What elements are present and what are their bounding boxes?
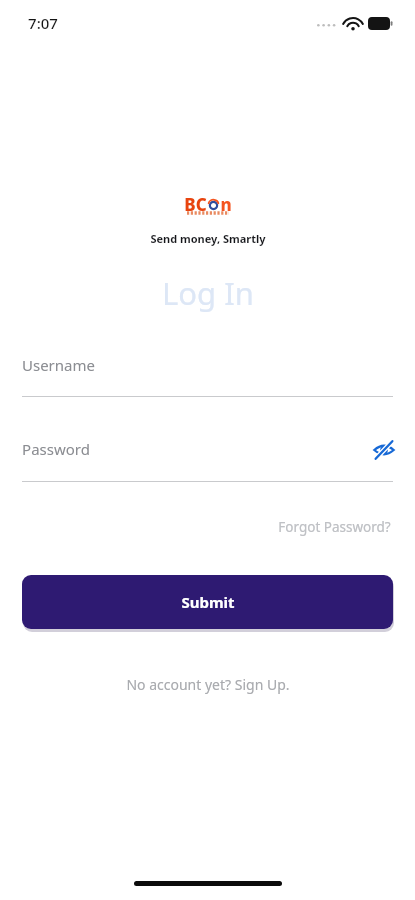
button[interactable]: Show password (367, 433, 401, 467)
staticText: 7:07 (28, 13, 58, 33)
staticText: Forgot Password? (278, 518, 391, 536)
staticText: Password (22, 439, 90, 459)
button[interactable]: Password (0, 432, 415, 478)
staticText: Submit (181, 592, 235, 612)
button[interactable]: No account yet? Sign Up. (120, 671, 296, 698)
staticText: BC (184, 193, 207, 216)
button[interactable]: Forgot Password? (276, 514, 393, 540)
button[interactable]: Submit (22, 575, 393, 629)
button[interactable]: Username (0, 348, 415, 392)
staticText: Log In (162, 272, 254, 314)
staticText: No account yet? Sign Up. (126, 675, 290, 694)
staticText: n (220, 193, 232, 216)
staticText: Username (22, 355, 95, 375)
staticText: Send money, Smartly (150, 231, 266, 246)
